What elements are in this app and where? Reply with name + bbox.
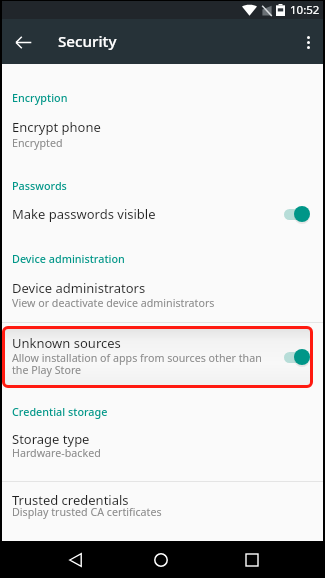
staticText: Encrypted bbox=[12, 136, 63, 151]
staticText: Make passwords visible bbox=[12, 205, 156, 223]
button[interactable]: Home bbox=[140, 541, 182, 578]
staticText: Security bbox=[58, 31, 117, 52]
button[interactable]: Storage type bbox=[0, 430, 325, 448]
staticText: 10:52 bbox=[290, 2, 320, 18]
staticText: Trusted credentials bbox=[12, 491, 129, 509]
button[interactable]: Recent apps bbox=[231, 541, 273, 578]
staticText: Device administrators bbox=[12, 279, 146, 297]
button[interactable]: Unknown sources bbox=[0, 334, 325, 352]
button[interactable]: Navigate up bbox=[4, 23, 42, 61]
button[interactable]: Encrypt phone bbox=[0, 118, 325, 136]
staticText: Encryption bbox=[12, 90, 68, 105]
staticText: Encrypt phone bbox=[12, 118, 101, 136]
button[interactable]: Trusted credentials bbox=[0, 491, 325, 509]
staticText: Credential storage bbox=[12, 404, 108, 419]
staticText: Device administration bbox=[12, 251, 125, 266]
staticText: Allow installation of apps from sources … bbox=[12, 351, 262, 377]
button[interactable]: Toggle setting bbox=[284, 206, 310, 222]
staticText: View or deactivate device administrators bbox=[12, 296, 215, 311]
button[interactable]: Toggle setting bbox=[284, 349, 310, 365]
staticText: Storage type bbox=[12, 430, 90, 448]
button[interactable]: Back bbox=[54, 541, 96, 578]
staticText: Hardware-backed bbox=[12, 446, 101, 461]
staticText: Display trusted CA certificates bbox=[12, 505, 162, 520]
staticText: Passwords bbox=[12, 178, 67, 193]
staticText: Unknown sources bbox=[12, 334, 121, 352]
button[interactable]: Device administrators bbox=[0, 279, 325, 297]
button[interactable]: Make passwords visible bbox=[0, 205, 325, 223]
button[interactable]: More options bbox=[293, 23, 323, 61]
